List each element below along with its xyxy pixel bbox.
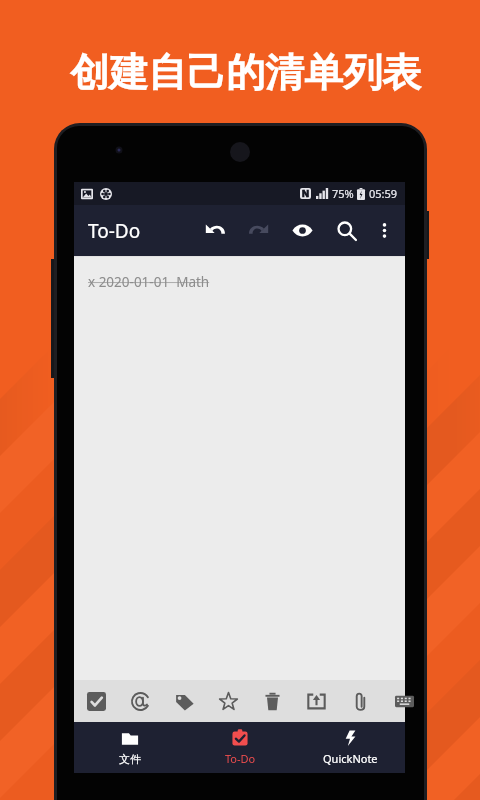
button[interactable]: Attach <box>338 680 382 722</box>
button[interactable]: Keyboard <box>382 680 424 722</box>
button[interactable]: Context <box>118 680 162 722</box>
button[interactable]: Search <box>324 205 368 256</box>
staticText: 05:59 <box>369 186 398 201</box>
button[interactable]: Complete <box>74 680 118 722</box>
button[interactable]: Delete <box>250 680 294 722</box>
button[interactable]: Tag <box>162 680 206 722</box>
staticText: 75% <box>332 186 354 201</box>
button[interactable]: To-Do <box>185 722 295 773</box>
staticText: QuickNote <box>323 751 378 766</box>
staticText: 文件 <box>119 752 141 766</box>
staticText: To-Do <box>225 751 256 766</box>
staticText: 创建自己的清单列表 <box>70 48 421 97</box>
button[interactable]: x 2020-01-01 Math <box>74 257 405 301</box>
button[interactable]: Preview <box>280 205 324 256</box>
button[interactable]: Undo <box>193 205 237 256</box>
button[interactable]: 文件 <box>74 722 185 773</box>
staticText: To-Do <box>88 218 141 244</box>
staticText: x 2020-01-01 Math <box>88 273 210 291</box>
button[interactable]: Priority <box>206 680 250 722</box>
button[interactable]: QuickNote <box>295 722 405 773</box>
button[interactable]: More options <box>368 205 400 256</box>
button[interactable]: Share <box>294 680 338 722</box>
button[interactable]: Redo <box>236 205 280 256</box>
